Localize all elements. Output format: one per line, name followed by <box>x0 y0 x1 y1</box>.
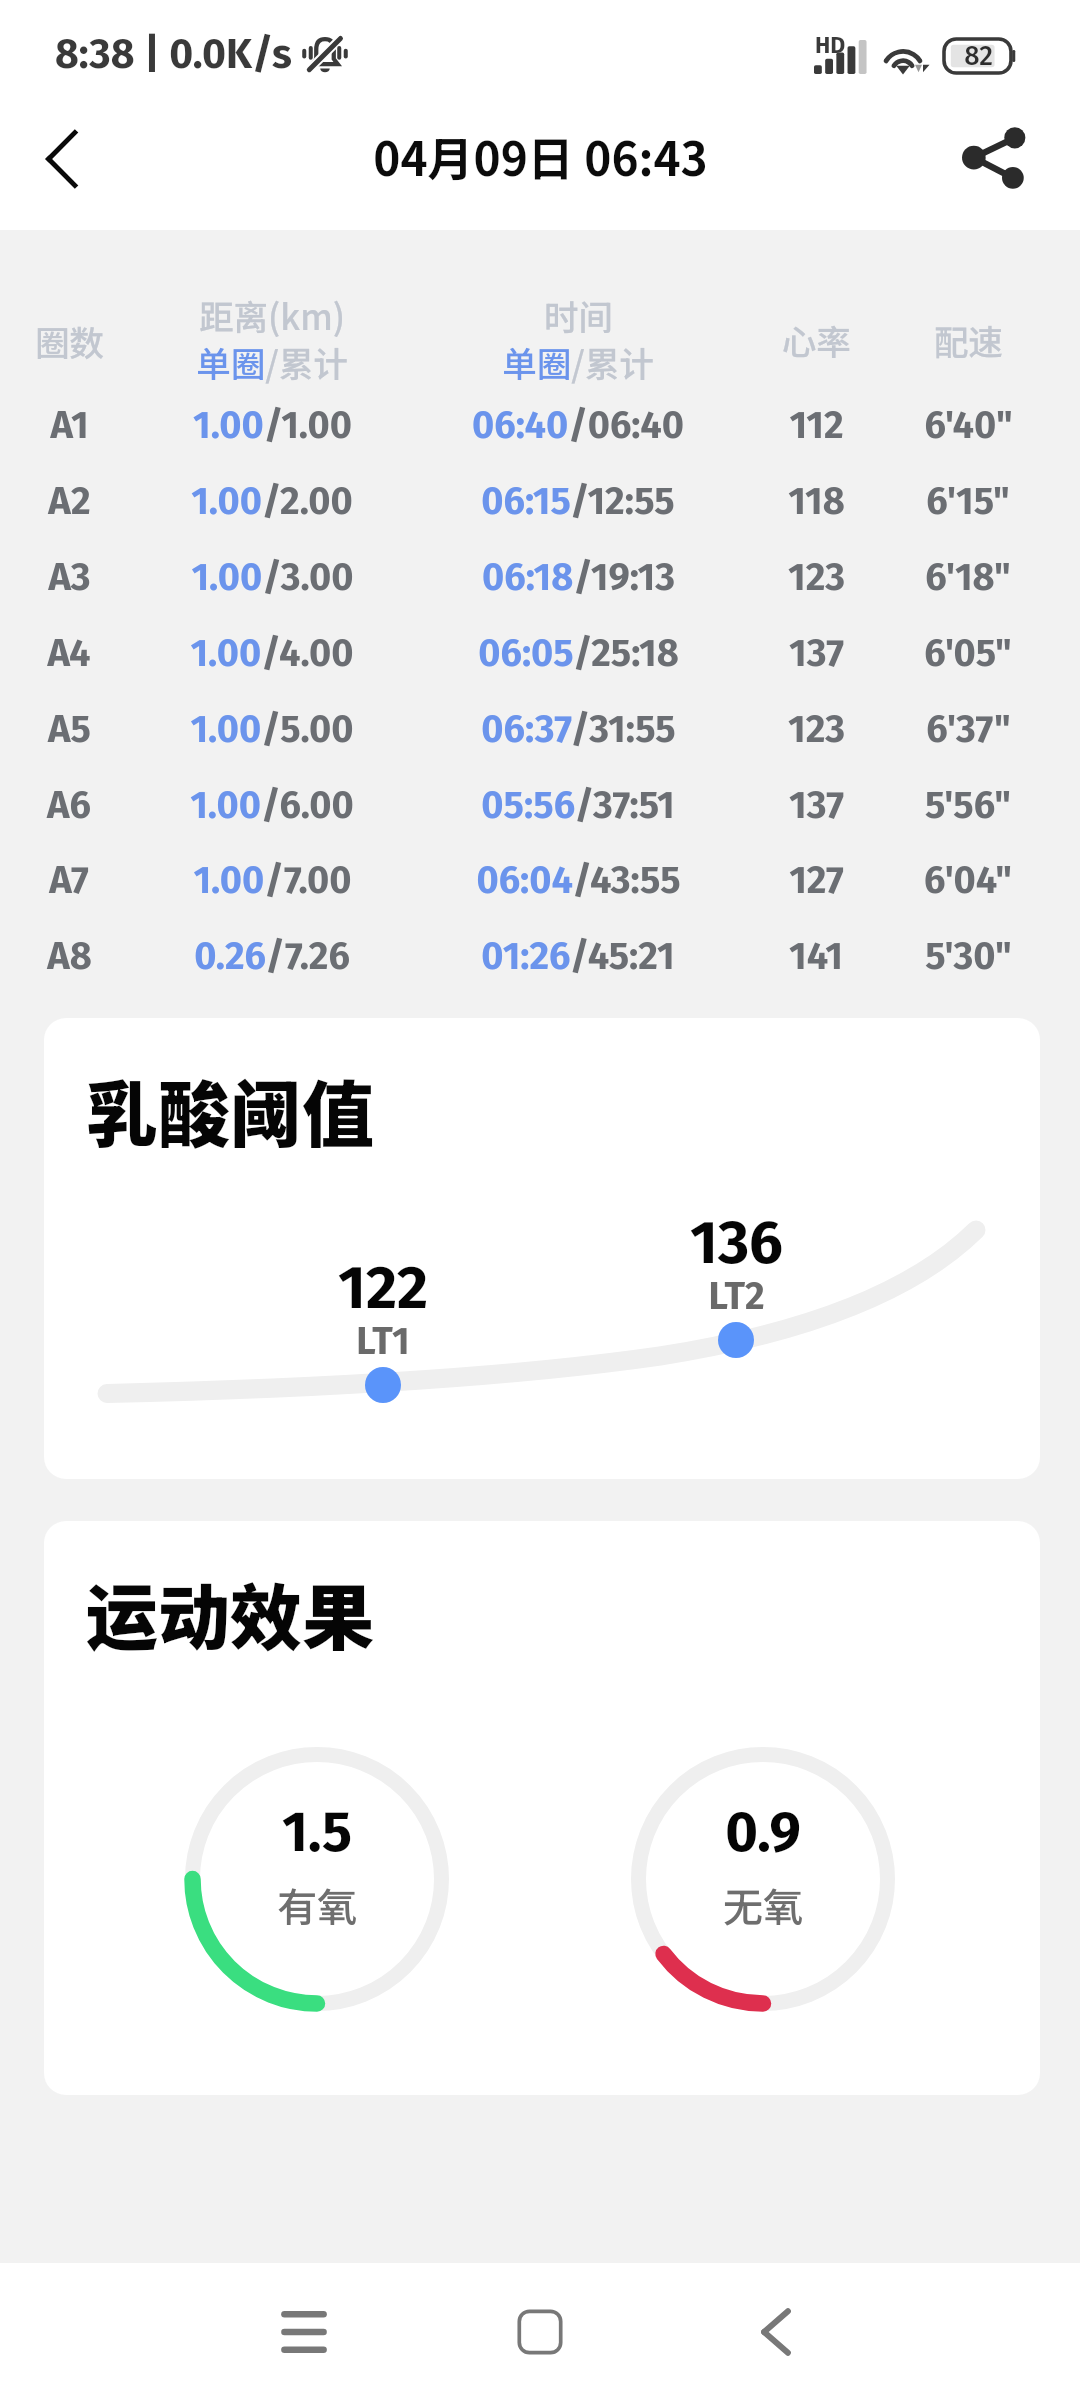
staticText: 1.00/2.00 <box>191 478 353 524</box>
staticText: 5'30" <box>925 933 1012 979</box>
staticText: 1.5 <box>282 1799 352 1866</box>
staticText: 118 <box>788 478 845 524</box>
staticText: 141 <box>789 933 843 979</box>
staticText: 06:40/06:40 <box>472 402 684 448</box>
staticText: 137 <box>789 630 844 676</box>
staticText: A1 <box>50 402 89 448</box>
staticText: 6'04" <box>924 857 1012 903</box>
staticText: A5 <box>48 706 91 752</box>
staticText: 05:56/37:51 <box>481 782 675 828</box>
staticText: 运动效果 <box>86 1560 375 1664</box>
staticText: 5'56" <box>925 782 1011 828</box>
staticText: A4 <box>47 630 91 676</box>
staticText: 137 <box>789 782 844 828</box>
staticText: A8 <box>47 933 92 979</box>
staticText: A6 <box>47 782 91 828</box>
staticText: 圈数 <box>35 316 104 366</box>
staticText: 单圈/累计 <box>196 337 348 387</box>
staticText: 有氧 <box>277 1876 357 1934</box>
staticText: 1.00/6.00 <box>190 782 354 828</box>
staticText: 1.00/3.00 <box>191 554 354 600</box>
staticText: 127 <box>789 857 844 903</box>
staticText: 112 <box>789 402 844 448</box>
staticText: 06:15/12:55 <box>481 478 675 524</box>
staticText: 6'37" <box>926 706 1011 752</box>
staticText: 时间 <box>544 290 613 340</box>
staticText: 06:04/43:55 <box>476 857 681 903</box>
staticText: 乳酸阈值 <box>86 1057 375 1161</box>
staticText: 1.00/5.00 <box>190 706 354 752</box>
staticText: 6'15" <box>926 478 1010 524</box>
button[interactable]: Back <box>16 114 106 204</box>
staticText: A7 <box>49 857 89 903</box>
staticText: 136 <box>690 1207 783 1279</box>
button[interactable]: 乳酸阈值 <box>44 1018 1040 1479</box>
staticText: 1.00/7.00 <box>193 857 352 903</box>
staticText: 6'40" <box>924 402 1013 448</box>
button[interactable]: Back <box>658 2263 894 2400</box>
staticText: A2 <box>48 478 91 524</box>
staticText: 心率 <box>782 315 851 365</box>
staticText: 06:05/25:18 <box>478 630 679 676</box>
staticText: 1.00/4.00 <box>190 630 354 676</box>
staticText: 单圈/累计 <box>502 337 654 387</box>
staticText: 无氧 <box>723 1876 803 1934</box>
staticText: 06:18/19:13 <box>482 554 675 600</box>
staticText: 06:37/31:55 <box>481 706 676 752</box>
staticText: 123 <box>788 554 845 600</box>
staticText: 01:26/45:21 <box>481 933 675 979</box>
staticText: LT2 <box>708 1273 765 1319</box>
button[interactable]: Recent apps <box>186 2263 422 2400</box>
staticText: 6'05" <box>924 630 1012 676</box>
staticText: 04月09日 06:43 <box>373 123 708 185</box>
staticText: 6'18" <box>925 554 1011 600</box>
staticText: 配速 <box>934 315 1003 365</box>
button[interactable]: 运动效果 <box>44 1521 1040 2095</box>
staticText: 距离(km) <box>199 290 345 340</box>
staticText: 123 <box>788 706 845 752</box>
button[interactable]: Share <box>949 113 1039 203</box>
staticText: LT1 <box>356 1318 410 1364</box>
staticText: 1.00/1.00 <box>193 402 352 448</box>
staticText: 0.9 <box>725 1799 801 1866</box>
staticText: 8:38 | 0.0K/s <box>55 30 292 79</box>
staticText: 122 <box>338 1252 428 1324</box>
staticText: HD <box>815 31 846 59</box>
staticText: 0.26/7.26 <box>194 933 350 979</box>
button[interactable]: Home <box>422 2263 658 2400</box>
staticText: A3 <box>48 554 91 600</box>
staticText: 82 <box>964 40 993 72</box>
